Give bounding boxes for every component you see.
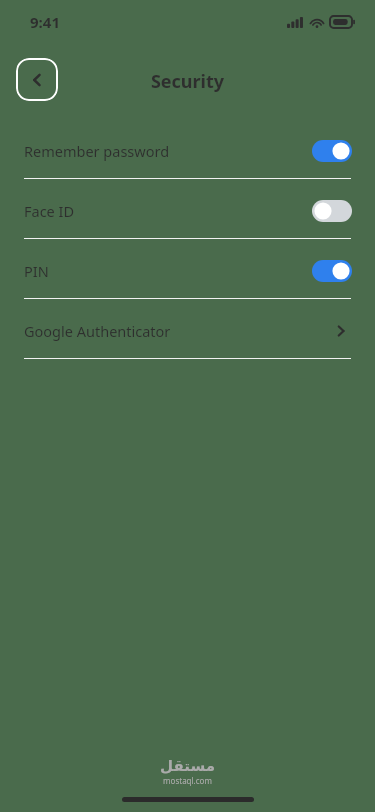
staticText: PIN — [24, 261, 312, 281]
button[interactable]: Off — [312, 200, 352, 222]
button[interactable]: On — [312, 260, 352, 282]
staticText: 9:41 — [30, 12, 60, 32]
button[interactable]: Face ID — [0, 184, 375, 238]
button[interactable]: On — [312, 140, 352, 162]
staticText: مستقل — [160, 757, 215, 774]
button[interactable]: Back — [16, 58, 58, 101]
button[interactable]: PIN — [0, 244, 375, 298]
staticText: Google Authenticator — [24, 321, 334, 341]
staticText: Remember password — [24, 141, 312, 161]
button[interactable]: Remember password — [0, 124, 375, 178]
staticText: Face ID — [24, 201, 312, 221]
staticText: Security — [0, 69, 375, 94]
button[interactable]: Google Authenticator — [0, 304, 375, 358]
staticText: mostaql.com — [163, 775, 212, 786]
